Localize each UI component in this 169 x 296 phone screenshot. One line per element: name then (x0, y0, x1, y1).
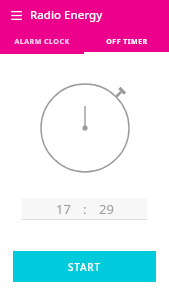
staticText: ALARM CLOCK (14, 37, 70, 47)
button[interactable]: START (13, 251, 156, 282)
staticText: START (68, 260, 101, 274)
staticText: 29 (99, 200, 114, 218)
button[interactable]: Open navigation menu (5, 4, 27, 26)
button[interactable]: ALARM CLOCK (0, 29, 84, 54)
button[interactable]: OFF TIMER (84, 29, 169, 54)
staticText: : (83, 200, 87, 218)
button[interactable]: 17 (22, 198, 147, 220)
staticText: OFF TIMER (106, 37, 148, 47)
staticText: 17 (56, 200, 71, 218)
staticText: Radio Energy (30, 7, 103, 23)
